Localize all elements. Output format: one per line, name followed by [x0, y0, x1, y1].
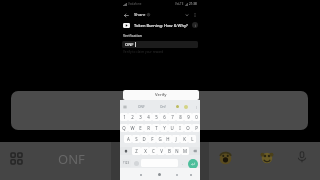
button[interactable]: More — [194, 105, 198, 109]
staticText: T — [155, 125, 158, 131]
button[interactable]: C — [149, 147, 157, 155]
staticText: 1 — [123, 114, 126, 120]
button[interactable]: Info — [192, 22, 198, 28]
button[interactable]: F — [148, 135, 156, 143]
staticText: 5 — [155, 114, 158, 120]
staticText: 8 — [179, 114, 182, 120]
staticText: ONF — [125, 42, 134, 47]
staticText: VoLTE — [175, 2, 184, 6]
button[interactable]: Expand — [183, 11, 191, 19]
staticText: Y — [163, 125, 166, 131]
staticText: 9 — [187, 114, 190, 120]
button[interactable]: Emoji suggestion — [217, 150, 234, 167]
staticText: B — [168, 148, 171, 154]
button[interactable]: Home — [155, 170, 164, 179]
staticText: P — [195, 125, 198, 131]
button[interactable]: 0 — [192, 113, 200, 121]
button[interactable]: K — [180, 135, 188, 143]
staticText: 7 — [171, 114, 174, 120]
button[interactable]: G — [156, 135, 164, 143]
button[interactable]: 2 — [128, 113, 136, 121]
button[interactable]: ONF — [122, 41, 198, 48]
staticText: M — [183, 148, 187, 154]
button[interactable]: X — [141, 147, 149, 155]
button[interactable]: W — [128, 124, 136, 132]
staticText: I — [179, 125, 181, 131]
button[interactable]: ?123 — [122, 159, 131, 167]
button[interactable]: D — [140, 135, 148, 143]
staticText: Verify to claim your reward — [123, 50, 164, 54]
button[interactable]: 9 — [184, 113, 192, 121]
button[interactable]: Verify — [123, 90, 199, 100]
staticText: Verify — [155, 92, 167, 98]
staticText: A — [127, 136, 130, 142]
button[interactable]: P — [192, 124, 200, 132]
button[interactable]: N — [173, 147, 181, 155]
button[interactable]: V — [157, 147, 165, 155]
button[interactable]: Back — [136, 170, 145, 179]
button[interactable]: Voice input — [294, 149, 310, 165]
button[interactable]: E — [136, 124, 144, 132]
button[interactable]: U — [168, 124, 176, 132]
button[interactable]: Q — [120, 124, 128, 132]
staticText: K — [183, 136, 186, 142]
staticText: X — [144, 148, 147, 154]
staticText: N — [175, 148, 179, 154]
button[interactable]: Hide keyboard — [186, 170, 195, 179]
button[interactable]: J — [172, 135, 180, 143]
staticText: ?123 — [123, 161, 130, 165]
staticText: Onf — [160, 105, 166, 109]
button[interactable]: 7 — [168, 113, 176, 121]
button[interactable]: 5 — [152, 113, 160, 121]
staticText: R — [147, 125, 150, 131]
button[interactable]: Token Burning: How & Why? — [123, 20, 198, 30]
staticText: V — [160, 148, 163, 154]
button[interactable]: A — [124, 135, 132, 143]
staticText: Q — [122, 125, 126, 131]
staticText: D — [142, 136, 146, 142]
staticText: J — [175, 136, 177, 142]
staticText: H — [166, 136, 170, 142]
button[interactable]: 4 — [144, 113, 152, 121]
button[interactable]: Emoji suggestion 2 — [259, 150, 275, 166]
button[interactable]: Recents — [172, 170, 181, 179]
staticText: Z — [135, 148, 138, 154]
button[interactable]: S — [132, 135, 140, 143]
button[interactable]: 8 — [176, 113, 184, 121]
button[interactable]: R — [144, 124, 152, 132]
button[interactable]: Keyboard options — [122, 104, 128, 110]
button[interactable]: Emoji — [132, 158, 140, 168]
staticText: O — [186, 125, 190, 131]
staticText: Verification — [123, 33, 143, 38]
button[interactable]: Z — [132, 147, 141, 155]
staticText: ONF — [138, 105, 145, 109]
staticText: i — [195, 23, 196, 28]
button[interactable]: More options — [192, 12, 198, 18]
button[interactable]: Y — [160, 124, 168, 132]
button[interactable]: I — [176, 124, 184, 132]
button[interactable]: Shift — [120, 147, 132, 155]
button[interactable]: Back — [122, 11, 130, 19]
button[interactable]: O — [184, 124, 192, 132]
staticText: E — [139, 125, 142, 131]
button[interactable]: H — [164, 135, 172, 143]
button[interactable]: L — [188, 135, 196, 143]
button[interactable]: Backspace — [189, 147, 200, 155]
button[interactable]: Apps — [7, 149, 25, 167]
staticText: 4 — [147, 114, 150, 120]
staticText: 21:38 — [189, 2, 197, 6]
staticText: . — [182, 161, 184, 166]
button[interactable]: 3 — [136, 113, 144, 121]
button[interactable]: 1 — [120, 113, 128, 121]
button[interactable]: Enter — [188, 159, 198, 169]
staticText: 3 — [139, 114, 142, 120]
staticText: 0 — [195, 114, 198, 120]
button[interactable]: B — [165, 147, 173, 155]
button[interactable]: M — [181, 147, 189, 155]
button[interactable]: 6 — [160, 113, 168, 121]
button[interactable]: T — [152, 124, 160, 132]
staticText: 2 — [131, 114, 134, 120]
staticText: W — [130, 125, 135, 131]
